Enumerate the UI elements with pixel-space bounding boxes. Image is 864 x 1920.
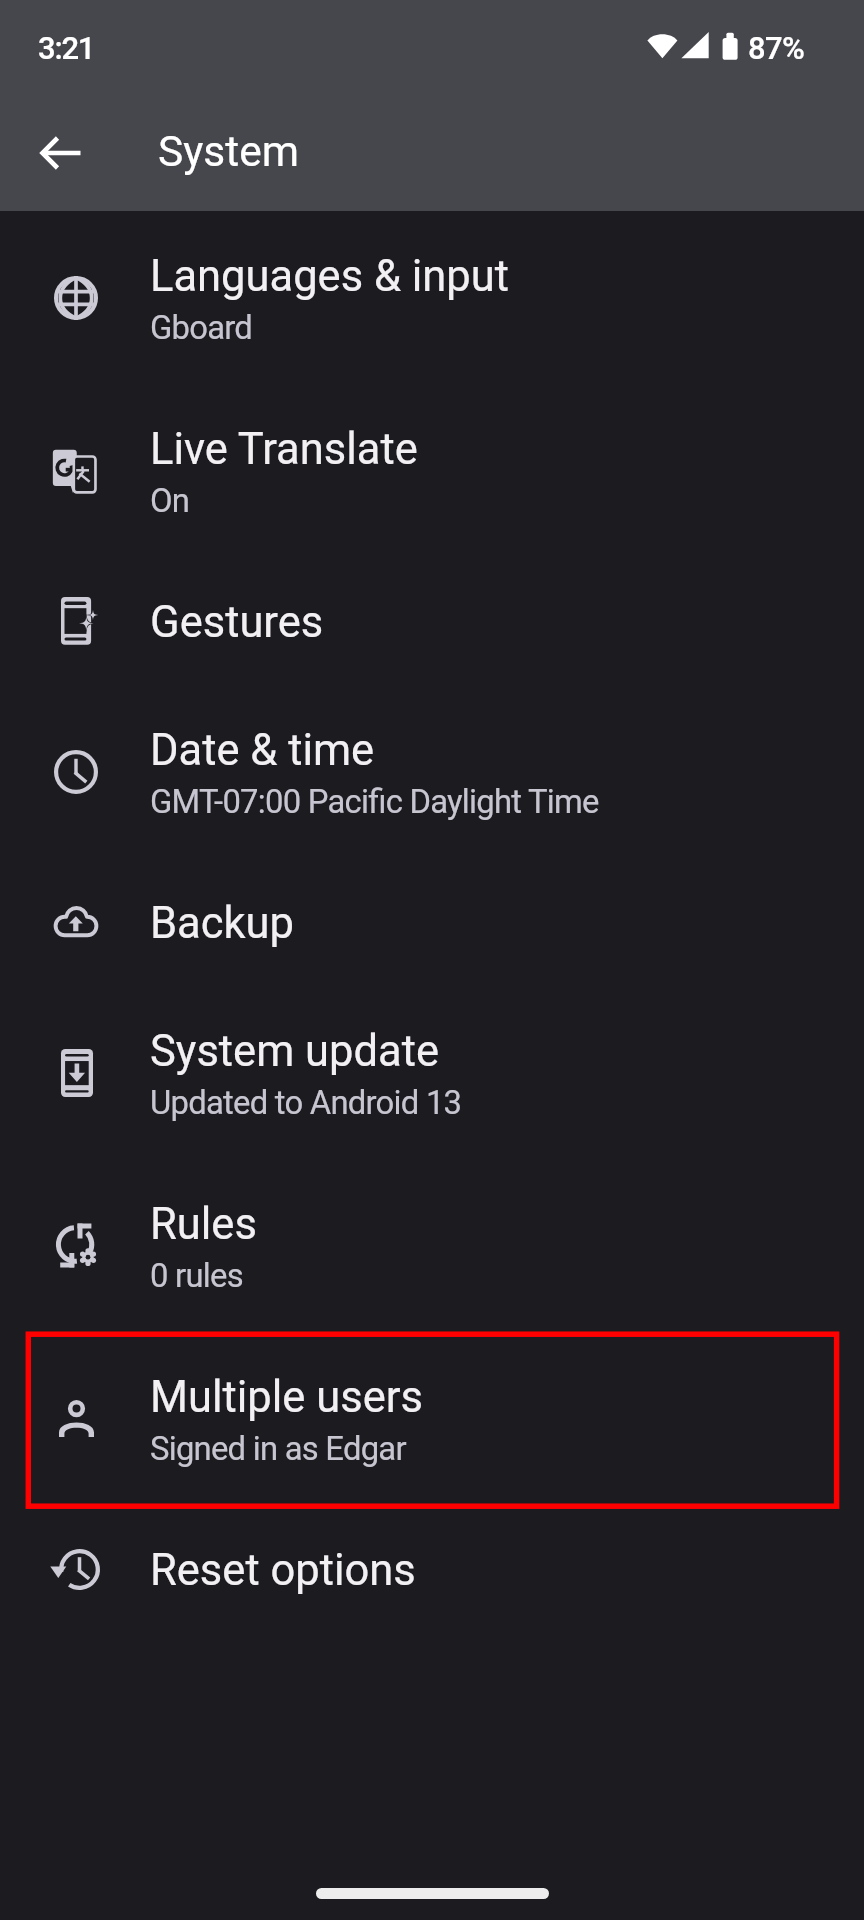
staticText: Updated to Android 13 — [150, 1084, 462, 1122]
staticText: Reset options — [150, 1545, 416, 1596]
staticText: Gboard — [150, 309, 253, 347]
other: Languages and input — [54, 276, 98, 320]
other: System update — [61, 1049, 93, 1097]
staticText: System update — [150, 1026, 439, 1077]
staticText: 87% — [748, 30, 805, 66]
button[interactable]: Rules — [0, 1159, 864, 1332]
button[interactable]: Multiple users — [0, 1332, 864, 1505]
button[interactable]: Date and time — [0, 685, 864, 858]
staticText: System — [158, 127, 299, 177]
staticText: Multiple users — [150, 1372, 423, 1423]
staticText: GMT-07:00 Pacific Daylight Time — [150, 783, 599, 821]
staticText: On — [150, 482, 190, 520]
staticText: Date & time — [150, 725, 375, 776]
button[interactable]: Live Translate — [0, 384, 864, 557]
button[interactable]: Gestures — [0, 557, 864, 685]
staticText: Gestures — [150, 597, 324, 648]
staticText: 0 rules — [150, 1257, 243, 1295]
button[interactable]: Back — [0, 96, 121, 210]
staticText: Live Translate — [150, 424, 418, 475]
staticText: Languages & input — [150, 251, 510, 302]
button[interactable]: Languages and input — [0, 211, 864, 384]
button[interactable]: Backup — [0, 858, 864, 986]
staticText: Rules — [150, 1199, 257, 1250]
other: Gestures — [61, 597, 97, 645]
other: Date and time — [54, 750, 98, 794]
button[interactable]: Reset options — [0, 1505, 864, 1633]
staticText: Signed in as Edgar — [150, 1430, 406, 1468]
staticText: Backup — [150, 898, 294, 949]
other: Backup — [54, 906, 98, 938]
button[interactable]: System update — [0, 986, 864, 1159]
staticText: 3:21 — [38, 30, 95, 66]
other: Reset options — [54, 1549, 100, 1590]
other: Multiple users — [59, 1400, 94, 1437]
other: Live Translate — [51, 448, 97, 494]
other: Rules — [56, 1223, 101, 1268]
